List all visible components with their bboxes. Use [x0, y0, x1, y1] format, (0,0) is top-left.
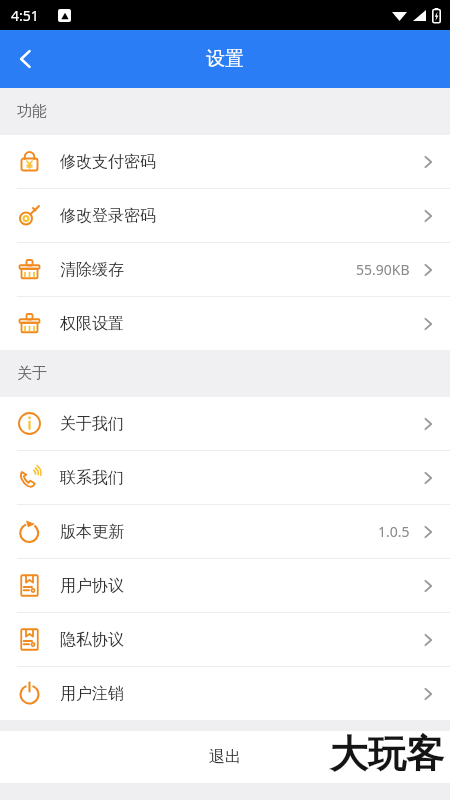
button[interactable]: 退出: [0, 731, 450, 783]
staticText: 用户协议: [60, 576, 124, 596]
staticText: 关于我们: [60, 414, 124, 434]
button[interactable]: Back: [0, 33, 52, 85]
button[interactable]: 修改登录密码: [0, 189, 450, 242]
button[interactable]: 版本更新: [0, 505, 450, 558]
staticText: 权限设置: [60, 314, 124, 334]
staticText: 清除缓存: [60, 260, 124, 280]
button[interactable]: 用户注销: [0, 667, 450, 720]
staticText: 55.90KB: [356, 260, 410, 279]
button[interactable]: 关于我们: [0, 397, 450, 450]
staticText: 1.0.5: [378, 522, 410, 541]
button[interactable]: 修改支付密码: [0, 135, 450, 188]
staticText: 修改登录密码: [60, 206, 156, 226]
staticText: 修改支付密码: [60, 152, 156, 172]
button[interactable]: 权限设置: [0, 297, 450, 350]
staticText: 关于: [17, 364, 47, 383]
button[interactable]: 联系我们: [0, 451, 450, 504]
staticText: 隐私协议: [60, 630, 124, 650]
staticText: 用户注销: [60, 684, 124, 704]
staticText: 4:51: [11, 6, 39, 25]
staticText: 联系我们: [60, 468, 124, 488]
staticText: 版本更新: [60, 522, 124, 542]
button[interactable]: 用户协议: [0, 559, 450, 612]
staticText: 功能: [17, 102, 47, 121]
staticText: 设置: [206, 47, 244, 71]
button[interactable]: 隐私协议: [0, 613, 450, 666]
staticText: 大玩客: [330, 730, 444, 778]
staticText: 退出: [209, 747, 241, 767]
button[interactable]: 清除缓存: [0, 243, 450, 296]
